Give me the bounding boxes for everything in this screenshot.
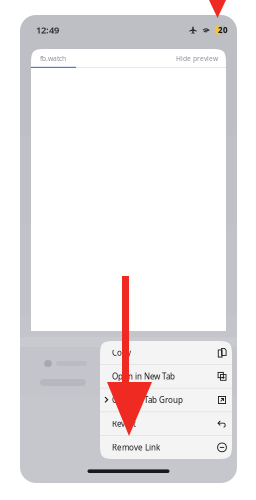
staticText: 20 <box>218 25 228 35</box>
staticText: fb.watch <box>40 54 66 63</box>
staticText: Remove Link <box>112 442 160 453</box>
staticText: Revert <box>112 418 136 429</box>
staticText: Open in Tab Group <box>112 395 183 405</box>
button[interactable]: Open in Tab Group <box>100 388 232 412</box>
button[interactable]: Open in New Tab <box>100 365 232 388</box>
staticText: Hide preview <box>176 54 218 63</box>
button[interactable]: Remove Link <box>100 436 232 459</box>
staticText: Open in New Tab <box>112 371 175 382</box>
button[interactable]: Copy <box>100 341 232 364</box>
staticText: 12:49 <box>36 24 59 36</box>
staticText: Copy <box>112 347 131 358</box>
button[interactable]: Revert <box>100 412 232 435</box>
